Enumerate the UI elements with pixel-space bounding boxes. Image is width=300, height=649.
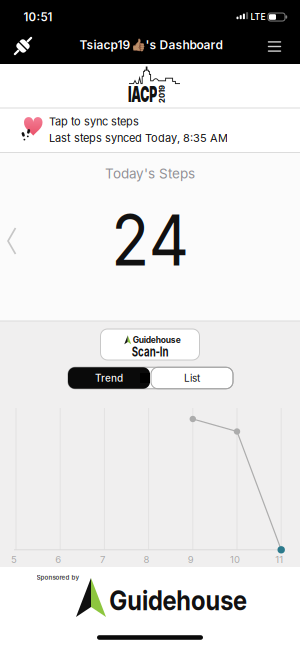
staticText: Today's Steps <box>105 165 195 182</box>
staticText: Last steps synced Today, 8:35 AM <box>49 131 228 145</box>
button[interactable]: Guidehouse <box>100 329 199 360</box>
staticText: 10 <box>230 554 240 565</box>
staticText: 9 <box>188 554 194 565</box>
staticText: LTE <box>250 12 265 22</box>
button[interactable]: Connection status <box>8 31 38 61</box>
staticText: Guidehouse <box>133 335 181 345</box>
staticText: Trend <box>95 372 123 384</box>
staticText: Tap to sync steps <box>49 115 139 128</box>
staticText: 10:51 <box>23 10 52 24</box>
staticText: 2019 <box>153 89 171 99</box>
staticText: 6 <box>55 554 61 565</box>
button[interactable]: Previous page <box>3 224 23 258</box>
staticText: 8 <box>144 554 150 565</box>
button[interactable]: List <box>152 367 232 389</box>
staticText: 11 <box>275 554 283 565</box>
staticText: Scan-In <box>124 343 175 360</box>
staticText: List <box>184 372 200 384</box>
button[interactable]: Menu <box>262 34 286 58</box>
button[interactable]: Trend <box>68 367 150 389</box>
staticText: 7 <box>100 554 105 565</box>
staticText: Sponsored by <box>36 574 79 581</box>
button[interactable]: Tap to sync steps <box>0 109 300 152</box>
staticText: IACP <box>116 81 168 107</box>
staticText: Guidehouse <box>98 583 258 617</box>
staticText: 24 <box>106 198 193 282</box>
staticText: 5 <box>11 554 17 565</box>
staticText: Tsiacp19👍🏽's Dashboard <box>79 38 222 52</box>
